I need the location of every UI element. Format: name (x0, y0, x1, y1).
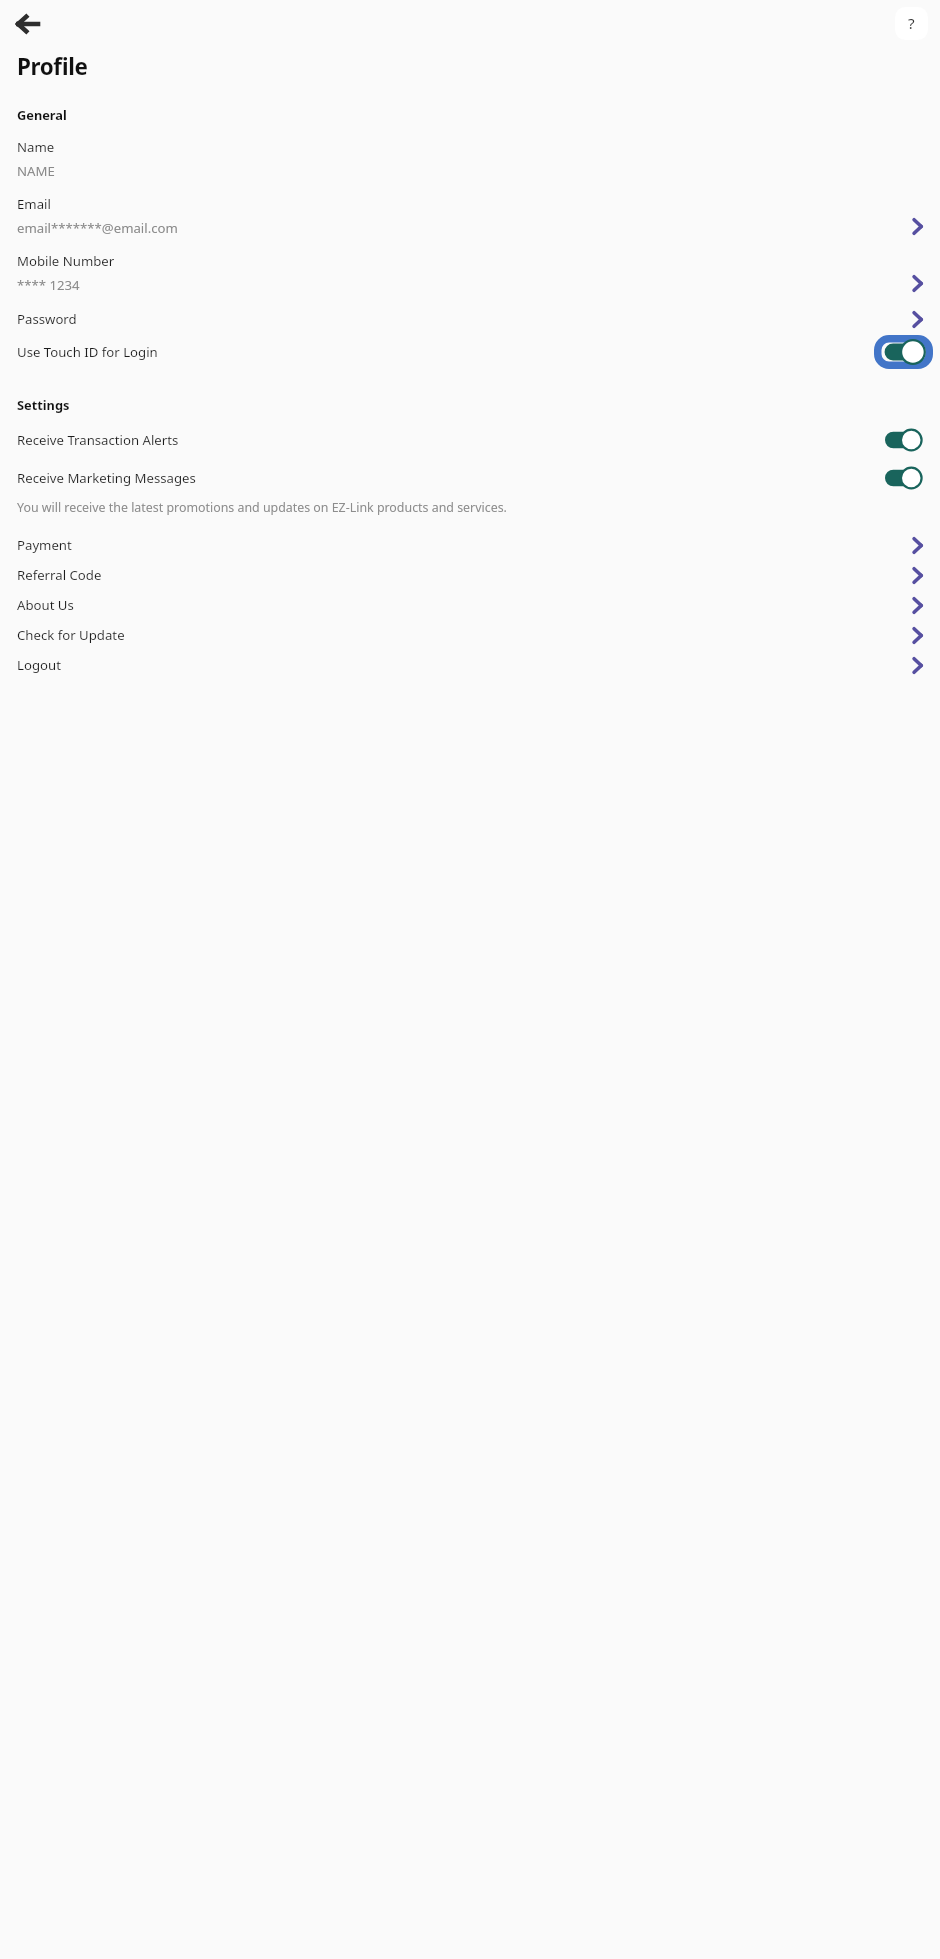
staticText: Receive Transaction Alerts (17, 431, 179, 449)
button[interactable]: Toggle (885, 429, 922, 451)
staticText: NAME (17, 162, 55, 180)
button[interactable]: Check for Update (0, 620, 940, 650)
staticText: Receive Marketing Messages (17, 469, 196, 487)
button[interactable]: Use Touch ID for Login (0, 333, 940, 371)
button[interactable]: Receive Marketing Messages (0, 463, 940, 493)
staticText: Password (17, 310, 77, 328)
staticText: About Us (17, 596, 74, 614)
staticText: email*******@email.com (17, 219, 178, 237)
staticText: Logout (17, 656, 61, 674)
button[interactable]: Logout (0, 650, 940, 680)
button[interactable]: Password (0, 305, 940, 333)
button[interactable]: Name (0, 136, 940, 182)
button[interactable]: Toggle (885, 467, 922, 489)
button[interactable]: Referral Code (0, 560, 940, 590)
staticText: Mobile Number (17, 252, 115, 270)
staticText: Email (17, 195, 51, 213)
staticText: Referral Code (17, 566, 102, 584)
staticText: Use Touch ID for Login (17, 343, 158, 361)
staticText: Check for Update (17, 626, 125, 644)
staticText: **** 1234 (17, 276, 80, 294)
staticText: ? (908, 13, 915, 34)
staticText: Profile (17, 51, 88, 82)
button[interactable]: Email (0, 193, 940, 239)
button[interactable]: Receive Transaction Alerts (0, 425, 940, 455)
staticText: Name (17, 138, 55, 156)
button[interactable]: Mobile Number (0, 250, 940, 296)
staticText: Payment (17, 536, 72, 554)
staticText: Settings (17, 396, 70, 413)
button[interactable]: Payment (0, 530, 940, 560)
staticText: General (17, 106, 67, 123)
button[interactable]: Use Touch ID for Login toggle (873, 334, 934, 370)
button[interactable]: Help (895, 7, 928, 40)
button[interactable]: Back (12, 9, 42, 39)
staticText: You will receive the latest promotions a… (17, 499, 507, 516)
button[interactable]: About Us (0, 590, 940, 620)
